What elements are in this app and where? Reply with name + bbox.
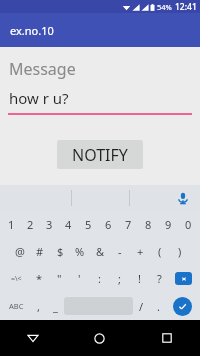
button[interactable]: 3 <box>40 211 59 238</box>
button[interactable]: Recents <box>133 320 200 356</box>
staticText: . <box>157 299 160 314</box>
button[interactable]: ( <box>150 238 170 265</box>
button[interactable]: , <box>30 292 47 320</box>
button[interactable]: Backspace <box>169 265 198 292</box>
staticText: 12:41 <box>175 1 197 13</box>
button[interactable]: 8 <box>138 211 158 238</box>
button[interactable]: ; <box>109 265 129 292</box>
button[interactable]: ) <box>170 238 190 265</box>
button[interactable]: 1 <box>2 211 21 238</box>
staticText: 8 <box>145 217 152 232</box>
staticText: & <box>96 244 105 259</box>
button[interactable]: . <box>150 292 167 320</box>
staticText: * <box>36 271 43 286</box>
staticText: @ <box>15 244 25 259</box>
staticText: 54% <box>157 2 172 12</box>
staticText: ; <box>118 271 121 286</box>
staticText: 6 <box>105 217 112 232</box>
button[interactable]: # <box>30 238 50 265</box>
button[interactable]: NOTIFY <box>57 140 143 169</box>
staticText: ? <box>157 271 162 286</box>
staticText: ) <box>178 244 182 259</box>
button[interactable]: ' <box>69 265 89 292</box>
button[interactable]: Enter <box>167 292 198 320</box>
button[interactable]: $ <box>50 238 70 265</box>
staticText: ! <box>138 271 141 286</box>
button[interactable]: Home <box>66 320 133 356</box>
staticText: 5 <box>85 217 92 232</box>
button[interactable]: - <box>110 238 130 265</box>
staticText: how r u? <box>9 88 69 108</box>
staticText: =\< <box>11 274 22 284</box>
button[interactable]: _ <box>47 292 64 320</box>
button[interactable]: Voice input <box>175 190 191 206</box>
staticText: " <box>57 271 62 286</box>
button[interactable]: & <box>90 238 110 265</box>
button[interactable]: @ <box>10 238 30 265</box>
button[interactable]: 9 <box>158 211 178 238</box>
staticText: % <box>75 244 85 259</box>
button[interactable]: : <box>89 265 109 292</box>
staticText: 4 <box>65 217 72 232</box>
staticText: , <box>37 299 40 314</box>
staticText: ex.no.10 <box>10 23 54 38</box>
staticText: # <box>36 244 44 259</box>
button[interactable]: ! <box>129 265 149 292</box>
staticText: / <box>139 299 144 314</box>
staticText: Message <box>9 58 76 80</box>
staticText: 1 <box>8 217 15 232</box>
staticText: 3 <box>46 217 53 232</box>
staticText: ' <box>78 271 81 286</box>
staticText: + <box>137 244 144 259</box>
button[interactable]: 7 <box>118 211 138 238</box>
button[interactable]: 4 <box>59 211 78 238</box>
button[interactable]: + <box>130 238 150 265</box>
staticText: 0 <box>185 217 192 232</box>
staticText: ( <box>158 244 162 259</box>
button[interactable]: 2 <box>21 211 40 238</box>
staticText: _ <box>53 299 58 314</box>
button[interactable]: 6 <box>98 211 118 238</box>
button[interactable]: * <box>30 265 49 292</box>
button[interactable]: ABC <box>2 292 30 320</box>
button[interactable]: / <box>133 292 150 320</box>
button[interactable]: " <box>49 265 69 292</box>
staticText: - <box>118 244 122 259</box>
button[interactable]: ? <box>149 265 169 292</box>
button[interactable]: 5 <box>78 211 98 238</box>
button[interactable]: % <box>70 238 90 265</box>
button[interactable]: Back <box>0 320 66 356</box>
button[interactable]: =\< <box>2 265 30 292</box>
staticText: 7 <box>125 217 132 232</box>
button[interactable]: 0 <box>178 211 198 238</box>
staticText: ABC <box>9 301 24 311</box>
staticText: 2 <box>27 217 34 232</box>
staticText: 9 <box>165 217 172 232</box>
staticText: NOTIFY <box>72 144 128 166</box>
staticText: $ <box>57 244 64 259</box>
staticText: : <box>98 271 101 286</box>
